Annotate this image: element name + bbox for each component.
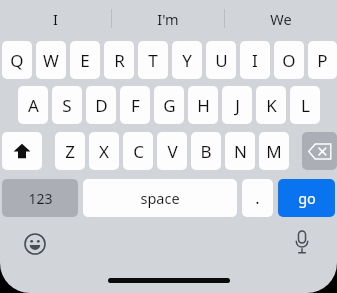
button[interactable]: J bbox=[222, 86, 252, 124]
button[interactable]: P bbox=[308, 41, 337, 79]
staticText: A bbox=[28, 94, 39, 117]
staticText: Y bbox=[182, 49, 192, 72]
staticText: M bbox=[266, 140, 282, 163]
staticText: 123 bbox=[28, 189, 53, 208]
button[interactable]: D bbox=[86, 86, 116, 124]
button[interactable]: K bbox=[256, 86, 286, 124]
staticText: T bbox=[148, 49, 158, 72]
staticText: I bbox=[252, 49, 258, 72]
button[interactable]: W bbox=[36, 41, 66, 79]
button[interactable]: O bbox=[274, 41, 304, 79]
button[interactable]: 123 bbox=[2, 179, 78, 217]
staticText: Q bbox=[10, 49, 24, 72]
staticText: U bbox=[215, 49, 228, 72]
staticText: S bbox=[62, 94, 72, 117]
staticText: K bbox=[266, 94, 277, 117]
button[interactable]: E bbox=[70, 41, 100, 79]
staticText: F bbox=[131, 94, 140, 117]
button[interactable]: M bbox=[259, 132, 289, 170]
button[interactable]: We bbox=[225, 0, 337, 37]
staticText: V bbox=[167, 140, 178, 163]
button[interactable]: Y bbox=[172, 41, 202, 79]
staticText: . bbox=[255, 187, 260, 209]
button[interactable]: X bbox=[89, 132, 119, 170]
button[interactable]: Backspace bbox=[302, 132, 337, 170]
button[interactable]: space bbox=[83, 179, 237, 217]
staticText: W bbox=[43, 49, 59, 72]
staticText: C bbox=[133, 140, 144, 163]
button[interactable]: H bbox=[188, 86, 218, 124]
staticText: H bbox=[197, 94, 210, 117]
staticText: N bbox=[234, 140, 247, 163]
button[interactable]: F bbox=[120, 86, 150, 124]
staticText: R bbox=[114, 49, 125, 72]
button[interactable]: C bbox=[123, 132, 153, 170]
button[interactable]: U bbox=[206, 41, 236, 79]
button[interactable]: I'm bbox=[112, 0, 224, 37]
staticText: space bbox=[140, 188, 180, 208]
staticText: B bbox=[200, 140, 212, 163]
button[interactable]: S bbox=[52, 86, 82, 124]
staticText: I'm bbox=[157, 9, 179, 29]
button[interactable]: R bbox=[104, 41, 134, 79]
staticText: I bbox=[53, 9, 58, 29]
staticText: L bbox=[301, 94, 310, 117]
staticText: G bbox=[163, 94, 176, 117]
staticText: X bbox=[99, 140, 109, 163]
staticText: P bbox=[317, 49, 328, 72]
button[interactable]: go bbox=[278, 179, 335, 217]
staticText: go bbox=[298, 188, 316, 208]
button[interactable]: I bbox=[240, 41, 270, 79]
button[interactable]: I bbox=[0, 0, 111, 37]
staticText: Z bbox=[65, 140, 75, 163]
button[interactable]: G bbox=[154, 86, 184, 124]
button[interactable]: A bbox=[18, 86, 48, 124]
staticText: E bbox=[80, 49, 90, 72]
button[interactable]: T bbox=[138, 41, 168, 79]
button[interactable]: N bbox=[225, 132, 255, 170]
button[interactable]: Shift bbox=[2, 132, 42, 170]
button[interactable]: Dictation bbox=[285, 225, 319, 259]
button[interactable]: L bbox=[290, 86, 320, 124]
staticText: O bbox=[282, 49, 296, 72]
button[interactable]: B bbox=[191, 132, 221, 170]
button[interactable]: . bbox=[242, 179, 273, 217]
button[interactable]: Z bbox=[55, 132, 85, 170]
staticText: D bbox=[95, 94, 108, 117]
staticText: We bbox=[270, 9, 292, 29]
button[interactable]: Emoji keyboard bbox=[18, 227, 52, 261]
staticText: J bbox=[235, 94, 240, 117]
button[interactable]: V bbox=[157, 132, 187, 170]
button[interactable]: Q bbox=[2, 41, 32, 79]
